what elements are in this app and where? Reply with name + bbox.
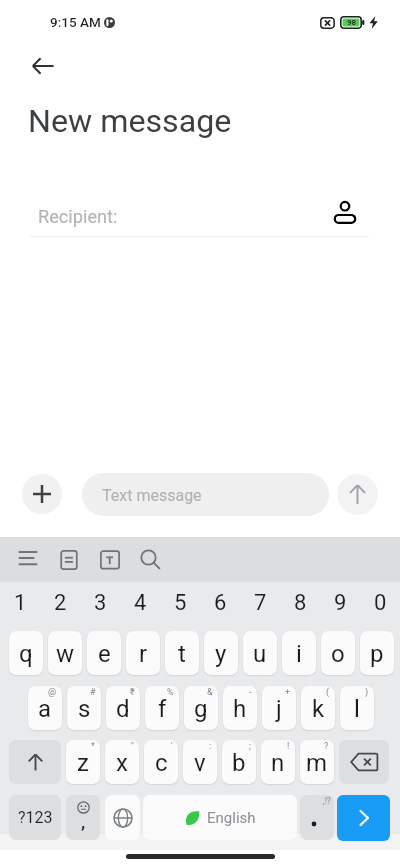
button[interactable]: j [262,686,296,730]
button[interactable]: 9 [320,585,360,621]
button[interactable]: 4 [120,585,160,621]
button[interactable]: Back [19,42,67,90]
button[interactable]: Backspace [339,740,389,784]
staticText: l [354,695,360,723]
button[interactable]: 8 [280,585,320,621]
staticText: " [131,741,134,752]
staticText: ( [326,687,330,698]
staticText: 1 [14,590,27,616]
button[interactable]: Menu [14,544,46,576]
button[interactable]: f [145,686,179,730]
staticText: & [207,687,213,698]
button[interactable]: x [105,740,139,784]
staticText: u [253,640,267,668]
button[interactable]: 3 [80,585,120,621]
button[interactable]: d [106,686,140,730]
staticText: # [90,687,96,698]
staticText: t [178,640,186,668]
button[interactable]: z [66,740,100,784]
staticText: 0 [374,590,387,616]
button[interactable]: n [261,740,295,784]
staticText: ? [324,741,329,752]
staticText: ) [365,687,369,698]
button[interactable]: 7 [240,585,280,621]
button[interactable]: Choose contact [325,192,365,232]
staticText: ! [287,741,290,752]
button[interactable]: p [360,631,394,675]
staticText: w [56,640,75,668]
button[interactable]: 2 [40,585,80,621]
button[interactable]: g [184,686,218,730]
button[interactable]: c [144,740,178,784]
button[interactable]: Search [134,543,166,575]
button[interactable]: k [301,686,335,730]
staticText: English [207,809,256,827]
staticText: y [215,640,227,668]
button[interactable]: t [165,631,199,675]
staticText: 2 [54,590,67,616]
staticText: 5 [174,590,187,616]
button[interactable]: h [223,686,257,730]
button[interactable]: Send [337,795,390,841]
button[interactable]: English [143,795,297,840]
button[interactable]: m [300,740,334,784]
button[interactable]: 5 [160,585,200,621]
button[interactable]: q [9,631,43,675]
staticText: v [194,749,206,777]
staticText: % [167,687,174,698]
staticText: Text message [102,486,202,505]
button[interactable]: i [282,631,316,675]
staticText: 98 [347,18,357,27]
button[interactable]: o [321,631,355,675]
button[interactable]: Emoji [66,795,100,840]
staticText: e [98,640,111,668]
button[interactable]: l [340,686,374,730]
button[interactable]: r [126,631,160,675]
button[interactable]: s [67,686,101,730]
button[interactable]: Add attachment [22,474,62,514]
staticText: z [77,749,89,777]
button[interactable]: Period [300,795,334,840]
button[interactable]: b [222,740,256,784]
button[interactable]: y [204,631,238,675]
staticText: k [312,695,325,723]
staticText: f [158,695,167,723]
staticText: New message [28,102,232,140]
button[interactable]: 0 [360,585,400,621]
button[interactable]: Change language [105,795,140,840]
staticText: @ [48,687,57,698]
staticText: i [296,640,302,668]
staticText: ; [249,741,251,752]
staticText: m [306,749,328,777]
staticText: h [233,695,247,723]
staticText: - [249,687,252,698]
button[interactable]: 6 [200,585,240,621]
staticText: + [285,687,291,698]
staticText: 7 [254,590,267,616]
button[interactable]: Clipboard [53,544,85,576]
staticText: s [78,695,91,723]
button[interactable]: w [48,631,82,675]
button[interactable]: Text message [82,473,329,516]
staticText: 4 [134,590,147,616]
staticText: r [139,640,148,668]
staticText: j [276,695,282,723]
staticText: 6 [214,590,227,616]
button[interactable]: 1 [0,585,40,621]
button[interactable]: Send message [337,474,378,515]
button[interactable]: u [243,631,277,675]
button[interactable]: e [87,631,121,675]
staticText: 3 [94,590,107,616]
staticText: d [116,695,130,723]
button[interactable]: Text editing [94,544,126,576]
button[interactable]: ?123 [9,795,61,840]
staticText: Recipient: [38,206,118,227]
staticText: o [331,640,345,668]
staticText: 8 [294,590,307,616]
staticText: , [81,812,86,832]
button[interactable]: a [28,686,62,730]
staticText: b [232,749,246,777]
button[interactable]: Shift [9,740,61,784]
button[interactable]: v [183,740,217,784]
staticText: 9:15 AM [50,14,101,30]
